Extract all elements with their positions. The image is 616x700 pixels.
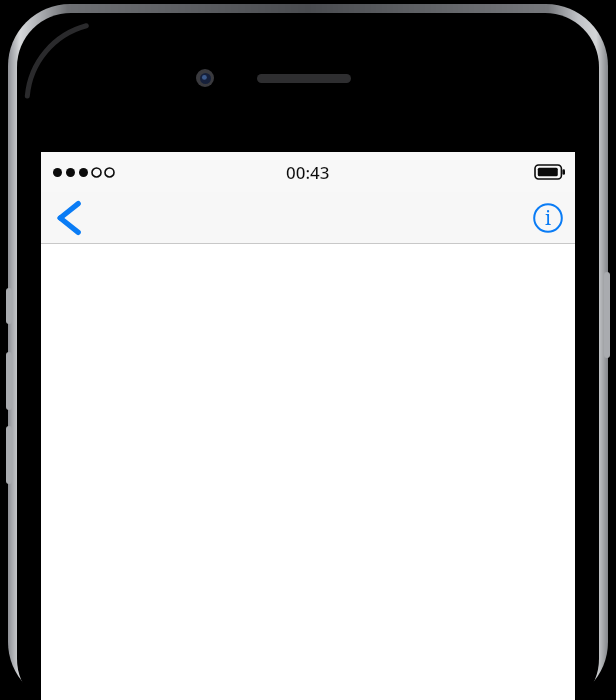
staticText: 00:43	[286, 161, 330, 184]
button[interactable]: Back	[41, 192, 97, 244]
staticText: i	[545, 205, 552, 231]
button[interactable]: Info	[521, 192, 575, 244]
